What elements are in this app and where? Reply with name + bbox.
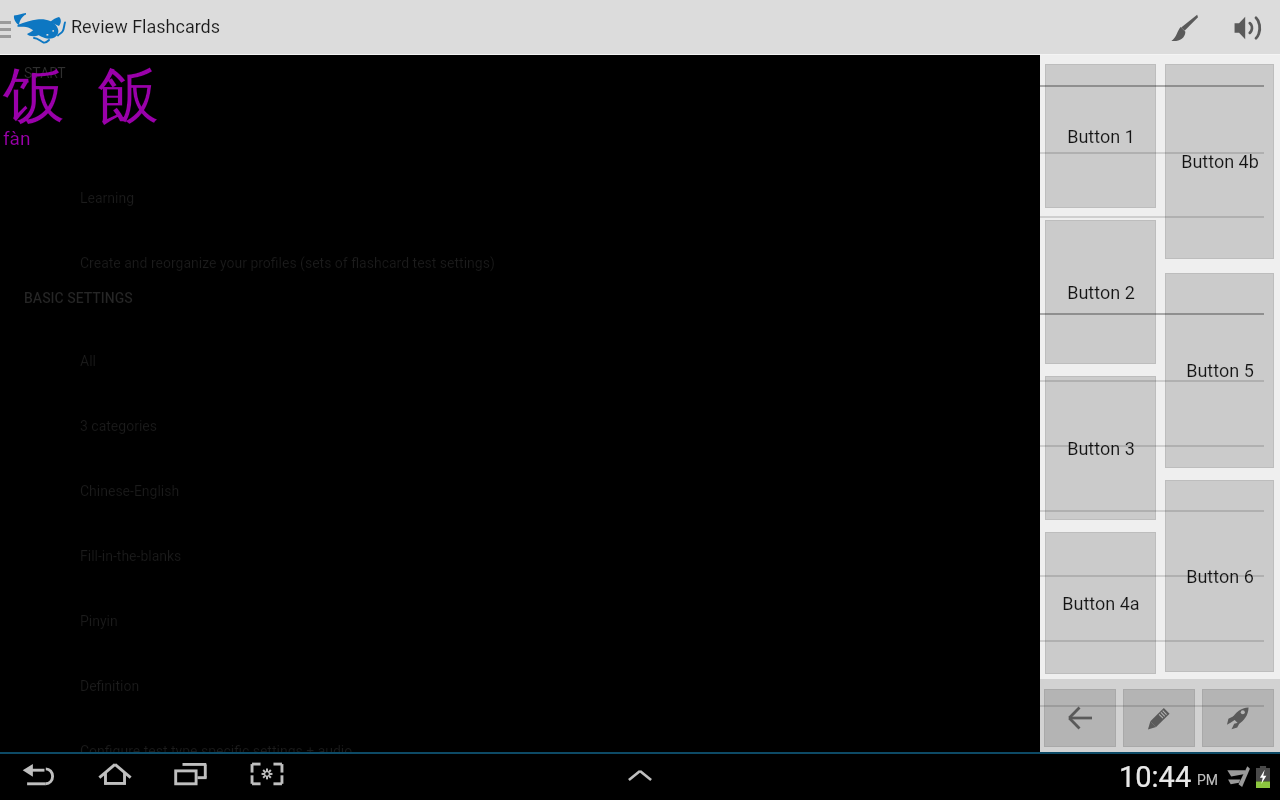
button[interactable]: Back	[1044, 689, 1116, 747]
staticText: START	[24, 65, 66, 81]
button[interactable]: Home	[77, 754, 153, 800]
staticText: Fill-in-the-blanks	[80, 548, 182, 564]
button[interactable]: Button 1	[1045, 64, 1156, 208]
staticText: Learning	[80, 190, 135, 206]
button[interactable]: Menu	[0, 0, 14, 55]
button[interactable]: Button 4a	[1045, 532, 1156, 674]
staticText: Button 6	[1186, 566, 1254, 587]
staticText: Button 4a	[1062, 593, 1140, 614]
button[interactable]: Brush	[1152, 0, 1216, 55]
button[interactable]: Back	[1, 754, 77, 800]
staticText: Configure test type specific settings + …	[80, 743, 353, 759]
button[interactable]: Button 6	[1165, 480, 1274, 672]
staticText: Pinyin	[80, 613, 118, 629]
staticText: All	[80, 353, 96, 369]
button[interactable]: Expand	[605, 754, 675, 800]
button[interactable]: Edit	[1123, 689, 1195, 747]
staticText: 10:44	[1119, 760, 1192, 794]
staticText: Create and reorganize your profiles (set…	[80, 255, 495, 271]
button[interactable]: Volume	[1216, 0, 1280, 55]
button[interactable]: Recents	[153, 754, 229, 800]
button[interactable]: Button 2	[1045, 220, 1156, 364]
button[interactable]: Button 3	[1045, 376, 1156, 520]
button[interactable]: Button 4b	[1165, 64, 1274, 259]
button[interactable]: Launch	[1202, 689, 1274, 747]
staticText: Button 3	[1067, 438, 1135, 459]
button[interactable]: Screenshot	[229, 754, 305, 800]
staticText: Button 2	[1067, 282, 1135, 303]
staticText: PM	[1197, 772, 1219, 788]
staticText: Definition	[80, 678, 140, 694]
staticText: BASIC SETTINGS	[24, 290, 133, 306]
staticText: 3 categories	[80, 418, 157, 434]
staticText: Button 1	[1067, 126, 1135, 147]
staticText: Button 5	[1186, 360, 1254, 381]
staticText: Chinese-English	[80, 483, 180, 499]
staticText: Button 4b	[1181, 151, 1259, 172]
button[interactable]: Button 5	[1165, 273, 1274, 468]
staticText: 饭 飯	[3, 51, 160, 136]
staticText: fàn	[3, 127, 31, 149]
staticText: Review Flashcards	[71, 16, 221, 37]
